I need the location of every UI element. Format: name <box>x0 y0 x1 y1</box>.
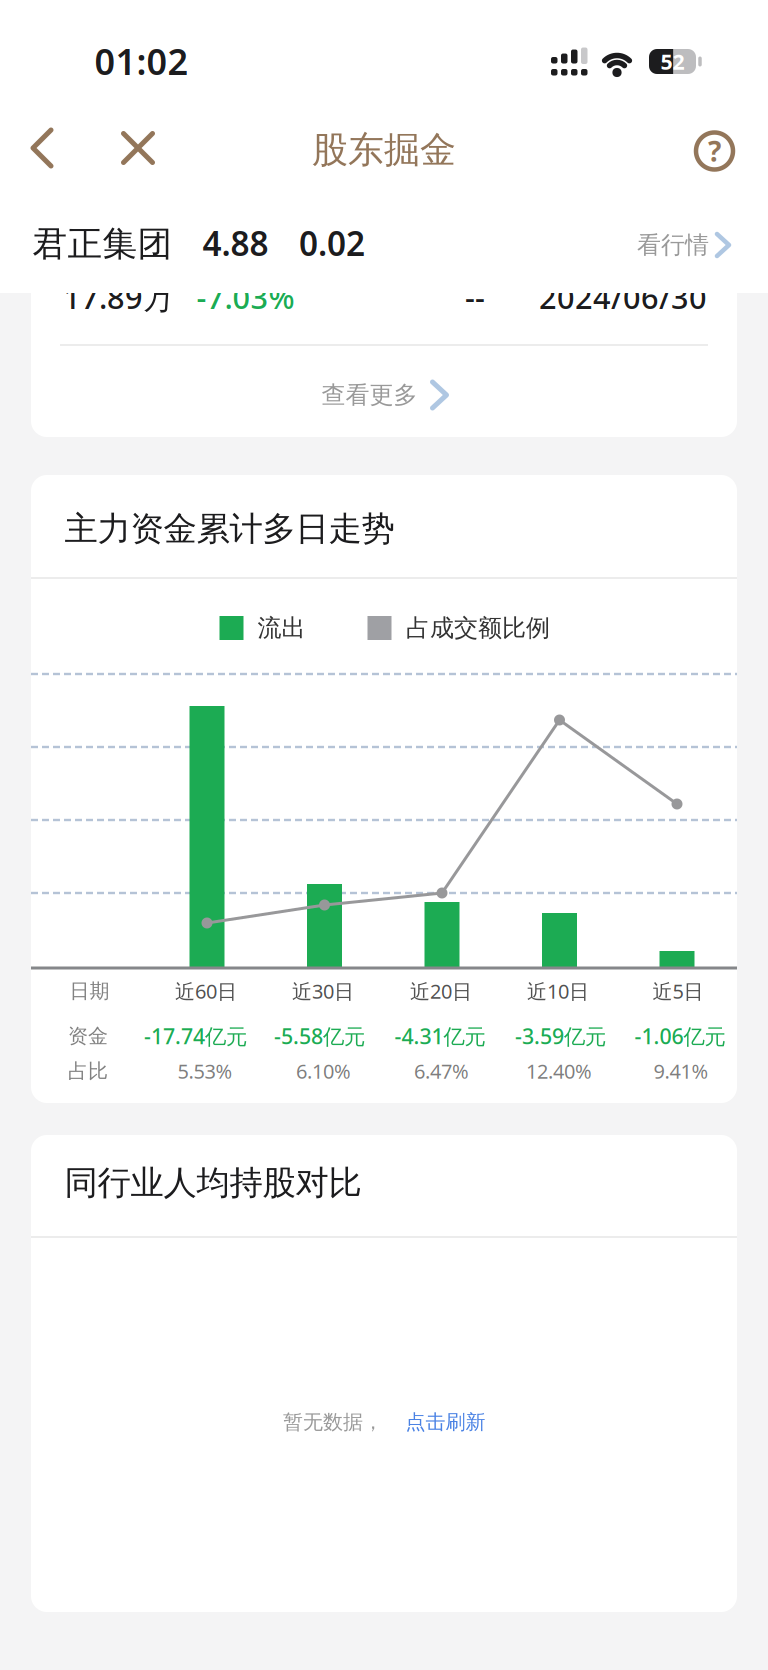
staticText: -1.06亿元 <box>634 1022 725 1050</box>
staticText: 流出 <box>257 613 305 643</box>
staticText: -3.59亿元 <box>515 1022 606 1050</box>
staticText: 同行业人均持股对比 <box>64 1162 361 1203</box>
staticText: 6.10% <box>296 1058 351 1084</box>
staticText: 近5日 <box>652 978 703 1004</box>
staticText: 近60日 <box>175 978 237 1004</box>
staticText: -17.74亿元 <box>144 1022 247 1050</box>
button[interactable]: 查看更多 <box>311 372 456 418</box>
staticText: 资金 <box>68 1024 108 1048</box>
staticText: 2024/06/30 <box>539 277 707 317</box>
staticText: 看行情 <box>637 230 709 260</box>
staticText: 近20日 <box>410 978 472 1004</box>
staticText: 占比 <box>68 1059 108 1083</box>
staticText: 日期 <box>69 979 109 1003</box>
staticText: -- <box>465 277 485 317</box>
staticText: 近30日 <box>292 978 354 1004</box>
button[interactable]: 看行情 <box>637 222 729 268</box>
staticText: 6.47% <box>414 1058 469 1084</box>
staticText: -7.03% <box>196 277 294 317</box>
staticText: 17.89万 <box>63 277 174 317</box>
staticText: 01:02 <box>94 37 188 85</box>
staticText: 12.40% <box>526 1058 592 1084</box>
staticText: 5.53% <box>177 1058 232 1084</box>
button[interactable]: 点击刷新 <box>399 1404 491 1440</box>
staticText: 查看更多 <box>321 380 417 410</box>
staticText: 52 <box>660 47 684 76</box>
staticText: 主力资金累计多日走势 <box>64 508 394 549</box>
button[interactable]: Back <box>25 124 59 172</box>
staticText: 4.88 <box>202 221 268 265</box>
staticText: 点击刷新 <box>405 1410 485 1434</box>
staticText: -4.31亿元 <box>394 1022 485 1050</box>
staticText: 近10日 <box>527 978 589 1004</box>
staticText: 股东掘金 <box>312 128 456 172</box>
staticText: ? <box>708 132 721 170</box>
staticText: 君正集团 <box>32 223 172 265</box>
staticText: 9.41% <box>653 1058 708 1084</box>
staticText: 暂无数据， <box>283 1410 383 1434</box>
button[interactable]: Help <box>692 129 736 173</box>
staticText: 占成交额比例 <box>406 613 550 643</box>
staticText: 0.02 <box>299 221 365 265</box>
button[interactable]: Close <box>115 125 160 170</box>
staticText: -5.58亿元 <box>274 1022 365 1050</box>
